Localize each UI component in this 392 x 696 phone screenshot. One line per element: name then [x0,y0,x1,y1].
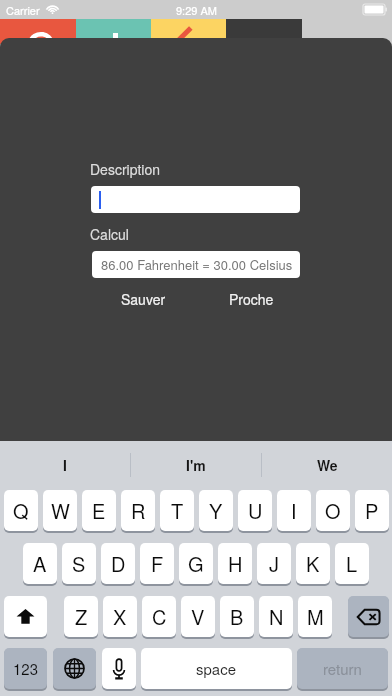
staticText: N [269,602,284,631]
button[interactable]: A [23,543,57,584]
staticText: L [346,549,358,578]
button[interactable]: R [121,490,155,531]
button[interactable]: I'm [131,441,261,488]
staticText: J [269,549,279,578]
staticText: We [317,455,338,475]
staticText: R [131,496,146,525]
staticText: Z [75,602,88,631]
staticText: A [33,549,47,578]
button[interactable]: S [62,543,96,584]
staticText: space [196,658,237,679]
button[interactable]: Dictation [102,648,136,689]
button[interactable]: return [297,648,388,689]
staticText: I [63,455,67,475]
button[interactable]: X [103,596,137,637]
button[interactable]: V [181,596,215,637]
staticText: S [72,549,86,578]
staticText: Carrier [6,2,40,18]
staticText: F [151,549,164,578]
staticText: 9:29 AM [176,2,217,18]
button[interactable]: W [43,490,77,531]
button[interactable]: Sauver [113,285,174,313]
button[interactable]: N [259,596,293,637]
staticText: C [152,602,167,631]
staticText: E [92,496,106,525]
staticText: Description [90,159,160,179]
staticText: Y [209,496,223,525]
staticText: return [323,658,362,679]
staticText: 123 [13,658,39,679]
staticText: M [307,602,324,631]
staticText: V [191,602,205,631]
button[interactable]: Q [4,490,38,531]
staticText: T [171,496,184,525]
button[interactable]: 123 [4,648,47,689]
staticText: D [111,549,126,578]
button[interactable]: space [141,648,292,689]
staticText: G [188,549,204,578]
button[interactable]: L [335,543,369,584]
staticText: O [325,496,341,525]
staticText: K [306,549,320,578]
button[interactable]: We [262,441,392,488]
button[interactable]: D [101,543,135,584]
button[interactable]: J [257,543,291,584]
button[interactable]: E [82,490,116,531]
button[interactable]: M [298,596,332,637]
staticText: H [228,549,243,578]
button[interactable]: F [140,543,174,584]
staticText: X [113,602,127,631]
staticText: U [248,496,263,525]
button[interactable]: O [316,490,350,531]
button[interactable]: Z [64,596,98,637]
button[interactable]: Next keyboard [53,648,96,689]
button[interactable]: I [0,441,130,488]
button[interactable]: T [160,490,194,531]
button[interactable]: Y [199,490,233,531]
button[interactable]: C [142,596,176,637]
button[interactable]: H [218,543,252,584]
button[interactable]: K [296,543,330,584]
staticText: Calcul [90,224,129,244]
button[interactable]: Proche [221,285,282,313]
staticText: 86.00 Fahrenheit = 30.00 Celsius [101,255,293,274]
button[interactable]: Backspace [348,596,389,637]
staticText: I'm [186,455,206,475]
staticText: Proche [229,289,274,309]
button[interactable]: G [179,543,213,584]
button[interactable]: Shift [4,596,47,637]
staticText: I [291,496,297,525]
button[interactable] [91,186,300,213]
button[interactable]: P [355,490,389,531]
staticText: W [51,496,70,525]
staticText: B [230,602,244,631]
staticText: Q [13,496,29,525]
button[interactable]: B [220,596,254,637]
button[interactable]: I [277,490,311,531]
button[interactable]: U [238,490,272,531]
staticText: P [365,496,379,525]
button[interactable]: 86.00 Fahrenheit = 30.00 Celsius [92,251,300,278]
staticText: Sauver [121,289,166,309]
